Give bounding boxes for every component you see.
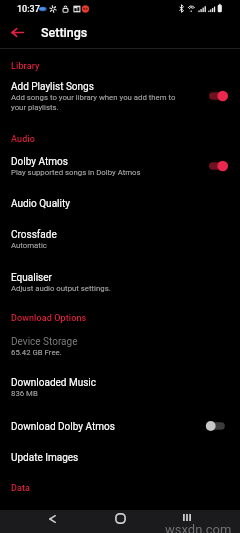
staticText: 65.42 GB Free. xyxy=(11,348,62,357)
staticText: Adjust audio output settings. xyxy=(11,284,111,293)
button[interactable]: Downloaded Music xyxy=(0,368,240,412)
staticText: Crossfade xyxy=(11,229,57,241)
button[interactable]: Update Images xyxy=(0,443,240,472)
button[interactable]: Dolby Atmos xyxy=(0,147,240,189)
button[interactable]: Toggle on xyxy=(209,160,228,172)
button[interactable]: Toggle off xyxy=(209,420,228,432)
staticText: Update Images xyxy=(11,452,79,464)
staticText: 10:37 xyxy=(17,4,40,15)
button[interactable]: Back xyxy=(40,510,64,527)
staticText: Equaliser xyxy=(11,272,52,284)
staticText: Add songs to your library when you add t… xyxy=(11,93,176,112)
staticText: Automatic xyxy=(11,241,47,250)
button[interactable]: Equaliser xyxy=(0,263,240,302)
staticText: Settings xyxy=(41,25,88,40)
button[interactable]: Crossfade xyxy=(0,220,240,263)
button[interactable]: Audio Quality xyxy=(0,189,240,220)
staticText: Device Storage xyxy=(11,336,78,348)
staticText: Download Options xyxy=(11,313,240,324)
button[interactable]: Home xyxy=(108,510,132,526)
button[interactable]: Add Playlist Songs xyxy=(0,72,240,123)
button[interactable]: Recents xyxy=(175,510,199,525)
button[interactable]: Toggle on xyxy=(209,90,228,102)
button[interactable]: Download Dolby Atmos xyxy=(0,412,240,443)
staticText: Audio xyxy=(11,134,240,145)
staticText: 836 MB xyxy=(11,389,38,398)
button[interactable]: Device Storage xyxy=(0,327,240,368)
button[interactable]: Back xyxy=(5,20,29,44)
staticText: Add Playlist Songs xyxy=(11,81,94,93)
staticText: Data xyxy=(11,483,240,494)
staticText: Dolby Atmos xyxy=(11,156,68,168)
staticText: Play supported songs in Dolby Atmos xyxy=(11,168,141,177)
staticText: Audio Quality xyxy=(11,198,70,210)
staticText: Library xyxy=(11,61,240,72)
staticText: Download Dolby Atmos xyxy=(11,421,115,433)
staticText: Downloaded Music xyxy=(11,377,97,389)
staticText: wsxdn.com xyxy=(165,522,232,533)
